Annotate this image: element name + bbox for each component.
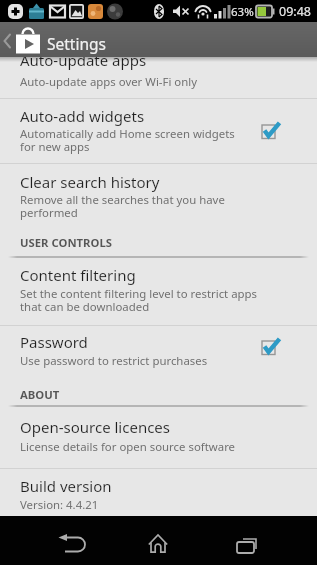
staticText: Auto-update apps over Wi-Fi only xyxy=(20,74,197,90)
button[interactable]: Auto-update apps xyxy=(0,22,317,98)
staticText: 09:48 xyxy=(279,3,311,20)
staticText: Auto-update apps xyxy=(20,50,147,70)
staticText: Open-source licences xyxy=(20,417,171,437)
button[interactable]: Clear search history xyxy=(0,164,317,229)
staticText: Version: 4.4.21 xyxy=(20,497,99,513)
button[interactable] xyxy=(133,524,185,560)
button[interactable]: Password xyxy=(0,326,317,377)
staticText: Auto-add widgets xyxy=(20,106,145,126)
staticText: Content filtering xyxy=(20,265,136,285)
button[interactable]: Build version xyxy=(0,469,317,516)
staticText: ABOUT xyxy=(20,387,60,402)
staticText: Settings xyxy=(47,33,106,54)
staticText: License details for open source software xyxy=(20,439,236,455)
button[interactable]: Open-source licences xyxy=(0,408,317,468)
button[interactable]: Auto-add widgets xyxy=(0,99,317,163)
staticText: Use password to restrict purchases xyxy=(20,353,208,369)
staticText: Build version xyxy=(20,476,112,496)
staticText: Set the content filtering level to restr… xyxy=(20,286,258,314)
button[interactable] xyxy=(43,524,95,560)
staticText: 63% xyxy=(231,4,254,20)
staticText: Clear search history xyxy=(20,172,160,192)
staticText: USER CONTROLS xyxy=(20,235,112,250)
staticText: Remove all the searches that you have pe… xyxy=(20,192,225,220)
button[interactable]: Content filtering xyxy=(0,259,317,325)
staticText: Automatically add Home screen widgets fo… xyxy=(20,126,235,154)
button[interactable]: Settings xyxy=(0,22,317,57)
staticText: Password xyxy=(20,332,88,352)
button[interactable] xyxy=(222,524,274,560)
